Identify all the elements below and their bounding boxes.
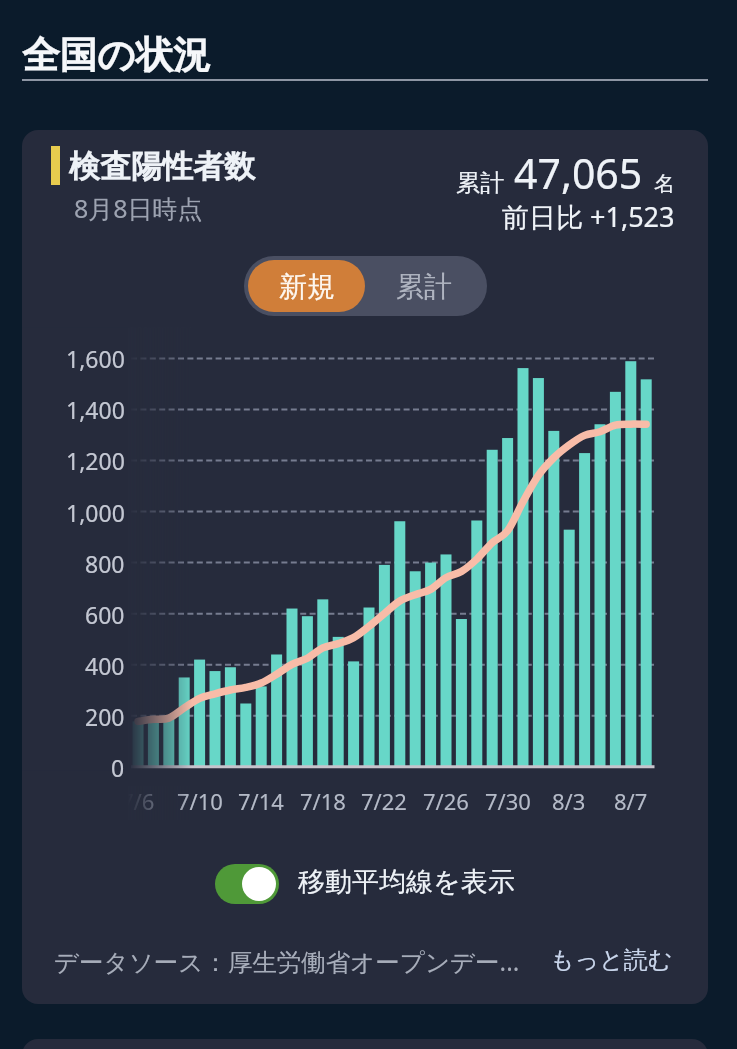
staticText: 全国の状況 bbox=[22, 32, 211, 79]
staticText: 400 bbox=[85, 650, 125, 681]
staticText: 7/10 bbox=[177, 786, 223, 816]
staticText: 7/26 bbox=[423, 786, 469, 816]
staticText: 累計 bbox=[396, 269, 452, 304]
staticText: 移動平均線を表示 bbox=[298, 865, 515, 899]
staticText: 0 bbox=[111, 752, 125, 783]
staticText: 名 bbox=[654, 171, 675, 197]
staticText: 1,600 bbox=[66, 343, 125, 374]
staticText: 600 bbox=[85, 599, 125, 630]
staticText: 新規 bbox=[279, 269, 335, 304]
staticText: 200 bbox=[85, 701, 125, 732]
staticText: 前日比 +1,523 bbox=[502, 198, 675, 235]
staticText: 検査陽性者数 bbox=[69, 147, 255, 186]
staticText: 8/3 bbox=[552, 786, 586, 816]
staticText: 7/6 bbox=[128, 786, 155, 816]
staticText: 8/7 bbox=[614, 786, 648, 816]
staticText: 7/18 bbox=[300, 786, 346, 816]
staticText: 1,400 bbox=[66, 394, 125, 425]
staticText: 7/22 bbox=[361, 786, 407, 816]
staticText: 累計 bbox=[456, 168, 504, 198]
staticText: 7/14 bbox=[238, 786, 284, 816]
staticText: 8月8日時点 bbox=[74, 191, 203, 225]
staticText: 1,000 bbox=[66, 497, 125, 528]
staticText: 1,200 bbox=[66, 445, 125, 476]
staticText: 7/30 bbox=[485, 786, 531, 816]
button[interactable]: 新規 bbox=[248, 260, 365, 312]
staticText: 800 bbox=[85, 548, 125, 579]
staticText: 47,065 bbox=[514, 145, 643, 201]
button[interactable]: もっと読む bbox=[550, 945, 673, 975]
button[interactable]: 移動平均線を表示 bbox=[215, 864, 279, 904]
button[interactable]: 累計 bbox=[365, 260, 483, 312]
staticText: データソース：厚生労働省オープンデー... bbox=[54, 945, 520, 978]
